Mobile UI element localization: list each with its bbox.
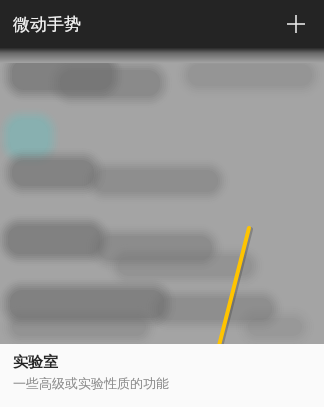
button[interactable]: 实验室 xyxy=(0,344,324,407)
staticText: 实验室 xyxy=(13,353,58,372)
staticText: 微动手势 xyxy=(13,14,81,35)
button[interactable]: Add xyxy=(276,4,316,44)
staticText: 一些高级或实验性质的功能 xyxy=(13,375,169,391)
